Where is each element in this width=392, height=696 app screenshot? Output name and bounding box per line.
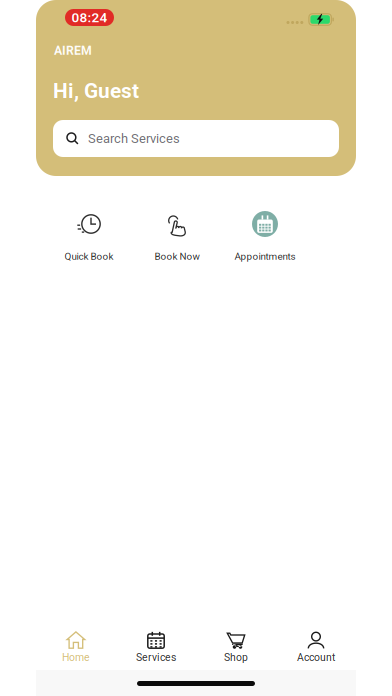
button[interactable]: Quick Book bbox=[45, 213, 133, 265]
staticText: Home bbox=[62, 651, 90, 664]
button[interactable]: Appointments bbox=[221, 213, 309, 265]
staticText: Services bbox=[136, 651, 176, 664]
staticText: Hi, Guest bbox=[53, 79, 139, 103]
button[interactable]: Account bbox=[276, 631, 356, 667]
button[interactable]: Book Now bbox=[133, 213, 221, 265]
staticText: 08:24 bbox=[71, 9, 107, 25]
button[interactable]: Services bbox=[116, 631, 196, 667]
staticText: Book Now bbox=[154, 251, 199, 262]
staticText: Search Services bbox=[88, 131, 180, 146]
button[interactable]: Home bbox=[36, 631, 116, 667]
button[interactable]: Search Services bbox=[53, 120, 339, 157]
staticText: Account bbox=[297, 651, 335, 664]
staticText: Appointments bbox=[234, 251, 295, 262]
button[interactable]: Shop bbox=[196, 631, 276, 667]
staticText: AIREM bbox=[54, 43, 92, 58]
staticText: Shop bbox=[224, 651, 248, 664]
staticText: Quick Book bbox=[64, 251, 113, 262]
